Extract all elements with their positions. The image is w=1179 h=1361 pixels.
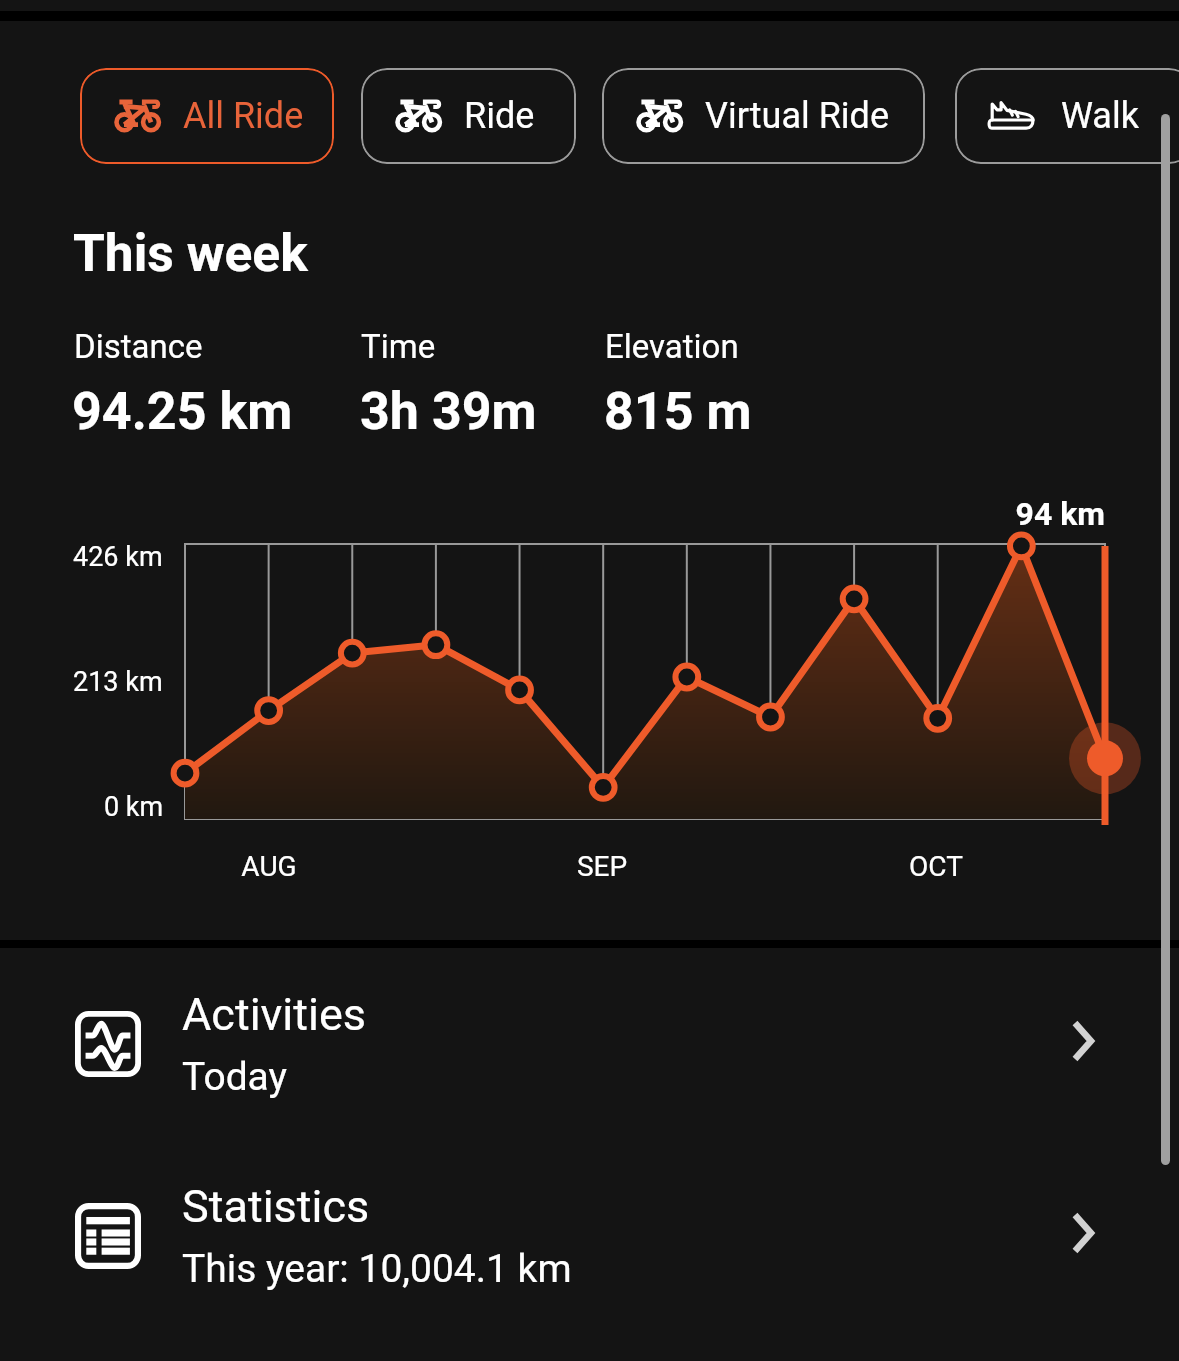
- staticText: All Ride: [183, 95, 304, 137]
- staticText: 426 km: [73, 541, 163, 573]
- staticText: Distance: [74, 327, 203, 366]
- staticText: Time: [361, 327, 436, 366]
- other: Statistics: [1069, 1209, 1097, 1257]
- staticText: Ride: [464, 95, 535, 137]
- staticText: AUG: [149, 850, 389, 883]
- staticText: 213 km: [73, 666, 163, 698]
- button[interactable]: Virtual Ride: [602, 68, 925, 164]
- staticText: Elevation: [605, 327, 739, 366]
- other: Activities: [1069, 1017, 1097, 1065]
- button[interactable]: Activities: [0, 989, 1179, 1133]
- staticText: This year: 10,004.1 km: [182, 1246, 572, 1292]
- button[interactable]: Ride: [361, 68, 576, 164]
- staticText: This week: [73, 223, 308, 283]
- staticText: 0 km: [104, 791, 164, 823]
- staticText: SEP: [482, 850, 722, 883]
- staticText: 94 km: [805, 495, 1105, 533]
- button[interactable]: All Ride: [80, 68, 334, 164]
- staticText: Today: [182, 1054, 288, 1100]
- staticText: OCT: [816, 850, 1056, 883]
- staticText: Walk: [1061, 95, 1139, 137]
- staticText: 94.25 km: [72, 381, 293, 442]
- staticText: 815 m: [604, 381, 752, 442]
- button[interactable]: Walk: [955, 68, 1179, 164]
- button[interactable]: Statistics: [0, 1181, 1179, 1325]
- staticText: Activities: [182, 988, 367, 1041]
- staticText: Virtual Ride: [705, 95, 889, 137]
- staticText: 3h 39m: [360, 381, 537, 442]
- staticText: Statistics: [182, 1180, 370, 1233]
